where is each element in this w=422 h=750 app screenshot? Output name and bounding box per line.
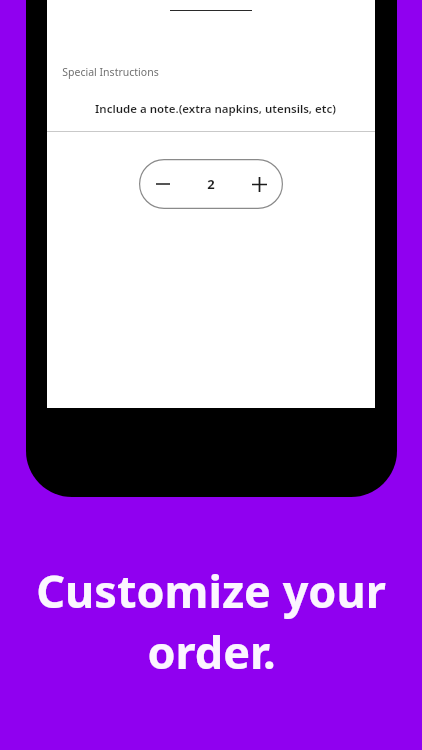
button[interactable]: Include a note.(extra napkins, utensils,… <box>56 101 375 117</box>
staticText: Customize your <box>36 560 386 621</box>
staticText: order. <box>147 621 276 682</box>
staticText: 2 <box>207 175 215 193</box>
button[interactable]: Decrease quantity <box>139 159 187 209</box>
button[interactable]: Increase quantity <box>235 159 283 209</box>
staticText: Special Instructions <box>62 65 159 79</box>
